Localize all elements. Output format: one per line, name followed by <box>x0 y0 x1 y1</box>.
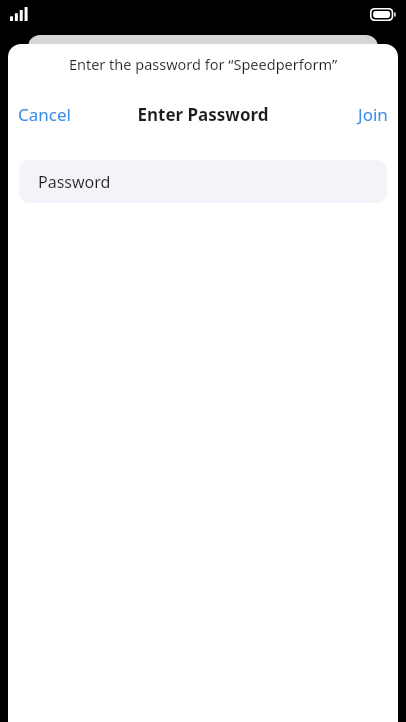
button[interactable]: Cancel <box>8 97 81 132</box>
staticText: Password <box>38 171 111 193</box>
other: Cellular signal <box>10 7 31 21</box>
other: Battery <box>370 8 397 21</box>
button[interactable]: Join <box>348 97 398 132</box>
staticText: Enter the password for “Speedperform” <box>8 54 398 74</box>
staticText: Join <box>358 103 388 126</box>
staticText: Cancel <box>18 103 71 126</box>
staticText: Enter Password <box>8 103 398 126</box>
button[interactable]: Password <box>19 160 387 203</box>
